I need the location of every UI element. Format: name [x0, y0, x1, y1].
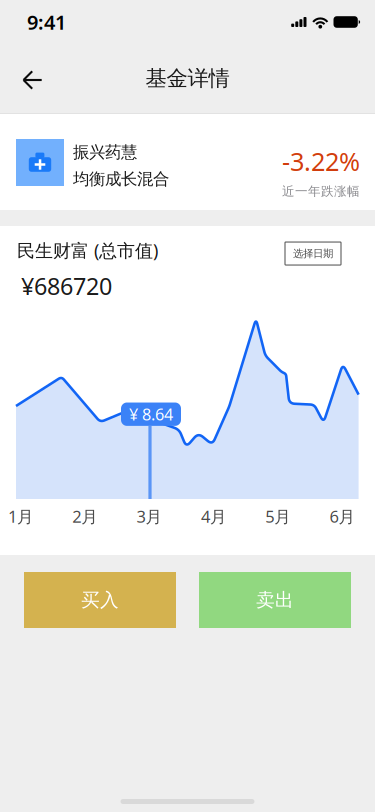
staticText: -3.22% [282, 144, 360, 178]
staticText: 9:41 [27, 8, 66, 36]
staticText: 均衡成长混合 [73, 169, 169, 189]
staticText: 4月 [201, 505, 227, 527]
staticText: 民生财富 (总市值) [17, 238, 158, 262]
button[interactable]: 买入 [24, 572, 176, 628]
staticText: 1月 [8, 505, 34, 527]
staticText: 3月 [137, 505, 163, 527]
staticText: 卖出 [256, 588, 294, 612]
staticText: 近一年跌涨幅 [282, 183, 360, 199]
staticText: ¥686720 [21, 270, 112, 302]
button[interactable]: Back [10, 58, 54, 102]
staticText: 选择日期 [293, 247, 333, 260]
staticText: 振兴药慧 [73, 142, 137, 163]
staticText: 5月 [265, 505, 291, 527]
staticText: ¥ 8.64 [129, 403, 173, 425]
button[interactable]: 卖出 [199, 572, 351, 628]
button[interactable]: 选择日期 [285, 242, 341, 265]
staticText: 买入 [81, 588, 119, 612]
staticText: 6月 [329, 505, 355, 527]
staticText: 2月 [72, 505, 98, 527]
staticText: 基金详情 [145, 65, 229, 92]
